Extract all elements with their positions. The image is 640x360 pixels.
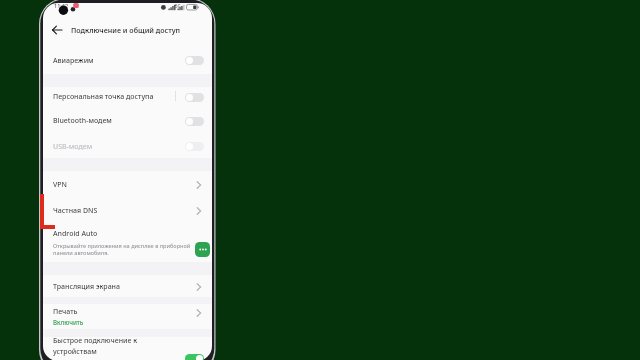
button[interactable] <box>185 354 204 360</box>
staticText: Android Auto <box>53 229 98 239</box>
button[interactable] <box>43 134 212 159</box>
staticText: Печать <box>53 307 78 317</box>
staticText: Трансляция экрана <box>53 282 120 292</box>
staticText: 5G <box>175 3 181 9</box>
button[interactable] <box>43 47 212 74</box>
button[interactable] <box>185 93 204 102</box>
staticText: Подключение и общий доступ <box>71 25 181 35</box>
staticText: Быстрое подключение к <box>53 336 138 346</box>
button[interactable] <box>43 84 212 109</box>
button[interactable] <box>43 304 212 330</box>
staticText: USB-модем <box>53 142 93 152</box>
button[interactable] <box>49 23 63 37</box>
button[interactable] <box>43 171 212 198</box>
button[interactable] <box>43 198 212 224</box>
staticText: VPN <box>53 180 68 190</box>
button[interactable] <box>43 275 212 297</box>
staticText: 11:42 <box>54 3 69 9</box>
staticText: устройствам <box>53 347 97 357</box>
button[interactable] <box>43 223 212 262</box>
staticText: Bluetooth-модем <box>53 116 112 126</box>
button[interactable] <box>185 56 204 65</box>
staticText: Авиарежим <box>53 56 94 66</box>
staticText: Персональная точка доступа <box>53 92 154 102</box>
button[interactable] <box>195 242 210 257</box>
button[interactable] <box>43 109 212 134</box>
staticText: Частная DNS <box>53 206 98 216</box>
staticText: Включить <box>53 318 84 326</box>
staticText: панели автомобиля. <box>53 249 109 256</box>
button[interactable] <box>43 337 212 360</box>
button[interactable] <box>185 142 204 151</box>
staticText: Открывайте приложения на дисплее в прибо… <box>53 242 191 249</box>
button[interactable] <box>185 117 204 126</box>
